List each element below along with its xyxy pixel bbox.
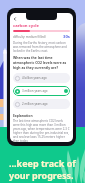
staticText: During the Earths history, most carbon w… xyxy=(13,41,70,53)
staticText: 4 billion years ago xyxy=(22,76,68,80)
staticText: Explanation xyxy=(13,113,33,117)
staticText: 2 million years ago xyxy=(22,102,68,106)
button[interactable]: 2 million years ago xyxy=(13,99,70,109)
staticText: 3 million years ago xyxy=(22,89,64,93)
staticText: 30s xyxy=(63,34,70,40)
staticText: difficulty: medium (filled) xyxy=(13,35,63,39)
button[interactable]: 4 billion years ago xyxy=(13,73,70,83)
button[interactable]: 3 million years ago xyxy=(13,86,70,96)
staticText: ...keep track of xyxy=(9,157,76,169)
staticText: carbon cycle xyxy=(13,23,40,29)
staticText: When was the last time atmospheric CO2 l… xyxy=(13,55,70,70)
staticText: Quizzes xyxy=(35,16,49,21)
button[interactable]: Back xyxy=(11,15,18,22)
staticText: The last time atmospheric CO2 levels wer… xyxy=(13,119,70,142)
staticText: your progress. xyxy=(9,169,74,181)
